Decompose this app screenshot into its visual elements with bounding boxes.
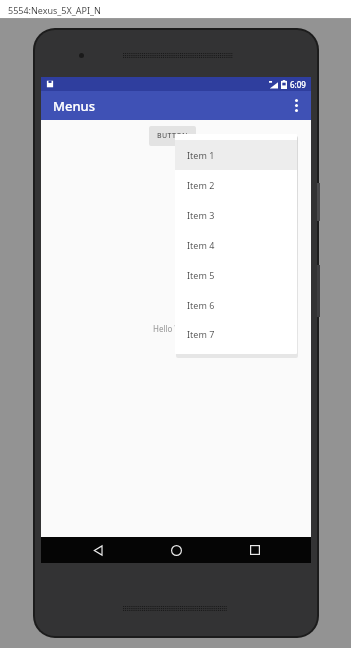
button[interactable]: Home [154,537,198,563]
button[interactable]: Item 6 [175,290,297,320]
button[interactable]: Recents [233,537,277,563]
staticText: Menus [53,97,96,115]
staticText: Item 6 [187,299,215,311]
button[interactable]: Item 1 [175,140,297,170]
button[interactable]: Back [76,537,120,563]
staticText: BUTTON [157,131,188,141]
button[interactable]: More options [282,91,311,120]
staticText: Item 3 [187,209,215,221]
staticText: Item 5 [187,269,215,281]
button[interactable]: Item 2 [175,170,297,200]
staticText: Item 7 [187,328,215,340]
button[interactable]: Item 4 [175,230,297,260]
staticText: 5554:Nexus_5X_API_N [8,4,101,16]
staticText: Item 2 [187,179,215,191]
staticText: Hello World! [153,323,200,334]
staticText: Item 4 [187,239,215,251]
button[interactable]: BUTTON [149,126,196,146]
button[interactable]: Item 3 [175,200,297,230]
staticText: Item 1 [187,149,215,161]
staticText: 6:09 [290,79,306,90]
button[interactable]: Item 7 [175,320,297,348]
button[interactable]: Item 5 [175,260,297,290]
